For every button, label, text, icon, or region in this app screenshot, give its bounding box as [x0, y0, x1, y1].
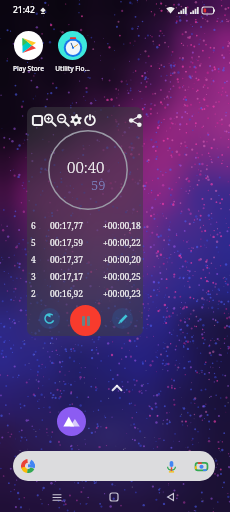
- staticText: 5: [31, 237, 50, 249]
- button[interactable]: Voice search: [13, 451, 215, 481]
- button[interactable]: 6: [27, 217, 143, 234]
- button[interactable]: Utility Flo…: [53, 31, 92, 73]
- staticText: 59: [91, 176, 106, 194]
- staticText: 00:17,59: [50, 237, 84, 249]
- staticText: 21:42: [13, 4, 35, 16]
- staticText: 00:17,77: [50, 220, 84, 232]
- staticText: +00:00,20: [103, 254, 141, 266]
- button[interactable]: Home: [104, 487, 124, 507]
- button[interactable]: 2: [27, 285, 143, 302]
- button[interactable]: Settings: [69, 111, 83, 129]
- button[interactable]: Zoom in: [43, 111, 57, 129]
- staticText: Utility Flo…: [55, 64, 90, 73]
- button[interactable]: Zoom out: [56, 111, 70, 129]
- button[interactable]: Back: [160, 487, 180, 507]
- staticText: 3: [31, 271, 50, 283]
- button[interactable]: 4: [27, 251, 143, 268]
- button[interactable]: Pause: [70, 305, 101, 336]
- button[interactable]: Recents: [47, 487, 67, 507]
- staticText: 00:16,92: [50, 288, 84, 300]
- staticText: 6: [31, 220, 50, 232]
- staticText: 00:17,17: [50, 271, 84, 283]
- staticText: 00:17,37: [50, 254, 84, 266]
- button[interactable]: Reset: [39, 308, 60, 329]
- button[interactable]: Power: [83, 111, 97, 129]
- button[interactable]: Stop: [30, 111, 44, 129]
- staticText: Play Store: [13, 64, 44, 73]
- staticText: +00:00,22: [103, 237, 141, 249]
- button[interactable]: Share: [128, 111, 142, 129]
- button[interactable]: Play Store: [9, 31, 48, 73]
- staticText: +00:00,18: [103, 220, 141, 232]
- staticText: +00:00,23: [103, 288, 141, 300]
- staticText: 2: [31, 288, 50, 300]
- button[interactable]: Google Lens: [195, 460, 208, 473]
- staticText: +00:00,25: [103, 271, 141, 283]
- button[interactable]: 5: [27, 234, 143, 251]
- button[interactable]: 3: [27, 268, 143, 285]
- button[interactable]: Gallery: [57, 407, 86, 436]
- staticText: 00:40: [67, 157, 105, 177]
- button[interactable]: Voice search: [165, 460, 178, 473]
- button[interactable]: Lap: [112, 308, 133, 329]
- staticText: 4: [31, 254, 50, 266]
